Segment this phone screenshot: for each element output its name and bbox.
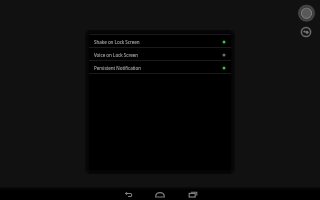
staticText: Voice on Lock Screen	[94, 52, 139, 58]
button[interactable]: Shake on Lock Screen	[89, 35, 231, 47]
button[interactable]: Voice on Lock Screen	[89, 48, 231, 60]
button[interactable]: Persistent Notification	[89, 61, 231, 73]
staticText: Shake on Lock Screen	[94, 39, 140, 45]
button[interactable]: Home	[153, 186, 169, 199]
button[interactable]: Recents	[186, 186, 202, 199]
button[interactable]: Options	[298, 24, 314, 40]
button[interactable]: Shutter	[297, 3, 316, 22]
staticText: Persistent Notification	[94, 65, 141, 71]
button[interactable]: Back	[121, 186, 137, 199]
